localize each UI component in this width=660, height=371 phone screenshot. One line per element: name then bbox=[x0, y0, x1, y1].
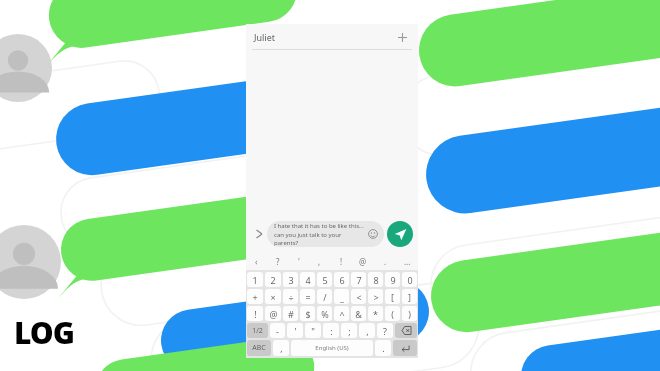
button[interactable]: , bbox=[309, 252, 330, 270]
staticText: 0 bbox=[407, 274, 413, 286]
staticText: ^ bbox=[339, 308, 345, 320]
button[interactable]: , bbox=[359, 323, 375, 338]
button[interactable]: > bbox=[368, 289, 383, 304]
button[interactable]: 7 bbox=[351, 272, 366, 287]
button[interactable]: Send bbox=[387, 221, 413, 247]
staticText: … bbox=[404, 256, 411, 267]
button[interactable]: [ bbox=[385, 289, 400, 304]
button[interactable]: ) bbox=[402, 306, 417, 321]
staticText: 9 bbox=[390, 274, 396, 286]
button[interactable]: : bbox=[323, 323, 339, 338]
button[interactable]: ! bbox=[330, 252, 352, 270]
button[interactable]: ? bbox=[377, 323, 393, 338]
button[interactable]: Add bbox=[394, 29, 410, 45]
button[interactable]: = bbox=[300, 289, 315, 304]
button[interactable]: . bbox=[374, 252, 396, 270]
button[interactable]: 3 bbox=[283, 272, 298, 287]
button[interactable]: 0 bbox=[402, 272, 417, 287]
button[interactable]: ? bbox=[267, 252, 288, 270]
button[interactable]: < bbox=[351, 289, 366, 304]
staticText: LOG bbox=[14, 312, 74, 353]
button[interactable]: Enter bbox=[393, 340, 417, 356]
button[interactable]: # bbox=[283, 306, 298, 321]
button[interactable]: 4 bbox=[300, 272, 315, 287]
button[interactable]: 8 bbox=[368, 272, 383, 287]
staticText: ‹ bbox=[255, 256, 258, 267]
button[interactable]: - bbox=[270, 323, 285, 338]
staticText: < bbox=[356, 291, 362, 303]
button[interactable]: , bbox=[273, 340, 289, 356]
staticText: , bbox=[280, 342, 283, 354]
button[interactable]: " bbox=[305, 323, 321, 338]
button[interactable]: ABC bbox=[247, 340, 271, 356]
button[interactable]: $ bbox=[300, 306, 315, 321]
button[interactable]: Emoji bbox=[366, 227, 380, 241]
staticText: 1/2 bbox=[252, 326, 263, 336]
staticText: " bbox=[311, 325, 315, 337]
staticText: ) bbox=[408, 308, 411, 320]
staticText: $ bbox=[305, 308, 311, 320]
button[interactable]: @ bbox=[265, 306, 281, 321]
staticText: ? bbox=[383, 325, 387, 337]
button[interactable]: … bbox=[396, 252, 418, 270]
button[interactable]: Backspace bbox=[395, 323, 417, 338]
staticText: I hate that it has to be like this... bbox=[274, 222, 364, 230]
button[interactable]: × bbox=[265, 289, 281, 304]
staticText: 8 bbox=[373, 274, 379, 286]
staticText: , bbox=[318, 256, 321, 267]
staticText: [ bbox=[391, 291, 394, 303]
button[interactable]: Expand bbox=[251, 226, 267, 242]
button[interactable]: ^ bbox=[334, 306, 349, 321]
button[interactable]: + bbox=[247, 289, 263, 304]
staticText: # bbox=[288, 308, 294, 320]
staticText: ; bbox=[348, 325, 351, 337]
button[interactable]: % bbox=[317, 306, 332, 321]
staticText: ! bbox=[340, 256, 343, 267]
button[interactable]: 6 bbox=[334, 272, 349, 287]
button[interactable]: 9 bbox=[385, 272, 400, 287]
staticText: ' bbox=[298, 256, 300, 267]
button[interactable]: . bbox=[375, 340, 391, 356]
staticText: × bbox=[270, 291, 276, 303]
button[interactable]: ‹ bbox=[246, 252, 267, 270]
staticText: . bbox=[384, 256, 387, 267]
staticText: 6 bbox=[339, 274, 345, 286]
button[interactable]: English (US) bbox=[291, 340, 373, 356]
button[interactable]: _ bbox=[334, 289, 349, 304]
button[interactable]: / bbox=[317, 289, 332, 304]
button[interactable]: ( bbox=[385, 306, 400, 321]
staticText: 4 bbox=[305, 274, 311, 286]
staticText: 2 bbox=[270, 274, 276, 286]
staticText: ( bbox=[391, 308, 394, 320]
button[interactable]: 2 bbox=[265, 272, 281, 287]
staticText: @ bbox=[269, 308, 278, 320]
staticText: . bbox=[382, 342, 385, 354]
staticText: + bbox=[252, 291, 258, 303]
staticText: @ bbox=[359, 256, 367, 267]
staticText: > bbox=[373, 291, 379, 303]
staticText: % bbox=[321, 308, 329, 320]
button[interactable]: 1/2 bbox=[247, 323, 268, 338]
staticText: Juliet bbox=[254, 31, 275, 43]
button[interactable]: & bbox=[351, 306, 366, 321]
staticText: 3 bbox=[288, 274, 294, 286]
button[interactable]: * bbox=[368, 306, 383, 321]
staticText: 5 bbox=[322, 274, 328, 286]
button[interactable]: @ bbox=[352, 252, 374, 270]
button[interactable]: ] bbox=[402, 289, 417, 304]
staticText: can you just talk to your parents? bbox=[274, 231, 366, 247]
staticText: = bbox=[305, 291, 311, 303]
staticText: ! bbox=[254, 308, 257, 320]
button[interactable]: ' bbox=[287, 323, 303, 338]
button[interactable]: ! bbox=[247, 306, 263, 321]
staticText: ? bbox=[276, 256, 280, 267]
staticText: / bbox=[323, 291, 327, 303]
button[interactable]: 1 bbox=[247, 272, 263, 287]
button[interactable]: ÷ bbox=[283, 289, 298, 304]
button[interactable]: 5 bbox=[317, 272, 332, 287]
staticText: _ bbox=[340, 291, 344, 303]
button[interactable]: ' bbox=[288, 252, 309, 270]
button[interactable]: I hate that it has to be like this... bbox=[267, 221, 384, 247]
button[interactable]: ; bbox=[341, 323, 357, 338]
staticText: 1 bbox=[252, 274, 258, 286]
